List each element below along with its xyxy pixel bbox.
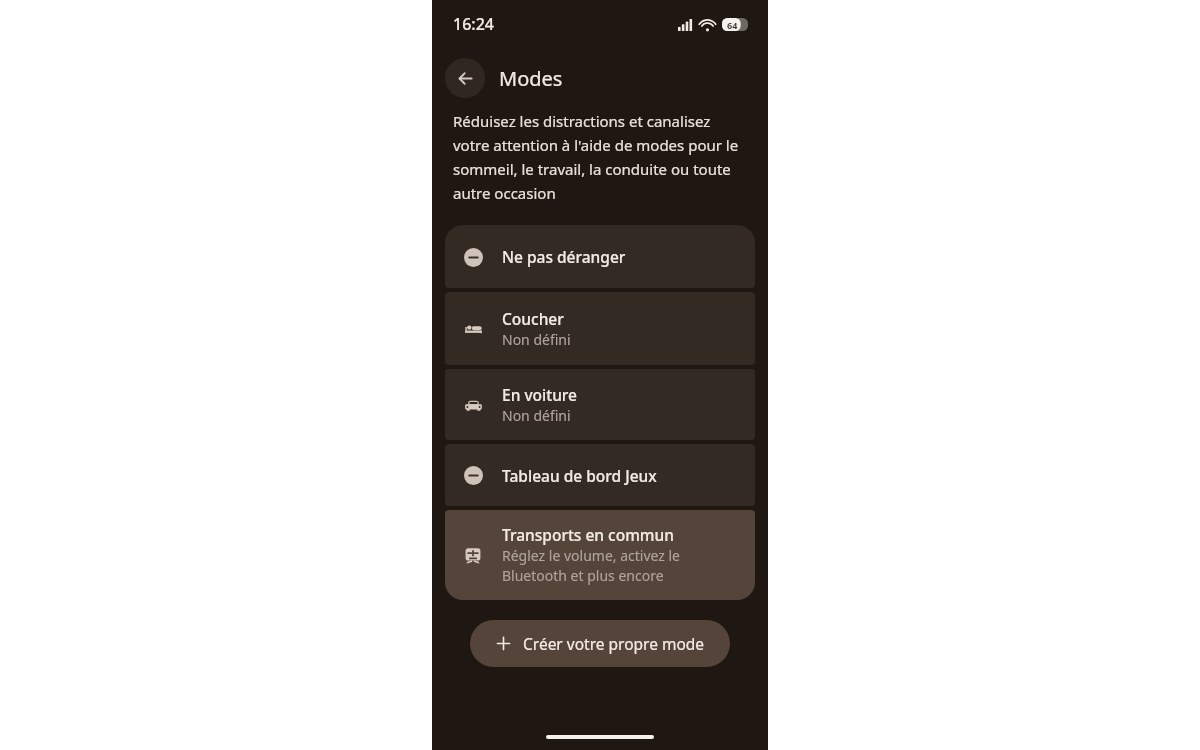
button[interactable]: Tableau de bord Jeux [445, 444, 755, 506]
button[interactable]: Créer votre propre mode [470, 620, 730, 667]
staticText: Non défini [502, 406, 571, 425]
button[interactable]: Back [445, 58, 485, 98]
staticText: 64 [727, 19, 738, 31]
staticText: Coucher [502, 308, 564, 329]
staticText: Réduisez les distractions et canalisez v… [453, 111, 746, 203]
staticText: Non défini [502, 330, 571, 349]
staticText: Créer votre propre mode [523, 633, 705, 654]
button[interactable]: Ne pas déranger [445, 225, 755, 288]
staticText: Ne pas déranger [502, 246, 626, 267]
button[interactable]: En voiture [445, 369, 755, 440]
staticText: En voiture [502, 384, 578, 405]
staticText: Tableau de bord Jeux [502, 465, 657, 486]
staticText: 16:24 [453, 13, 494, 35]
staticText: Modes [499, 65, 563, 92]
staticText: Transports en commun [502, 524, 674, 545]
button[interactable]: Coucher [445, 292, 755, 365]
staticText: Réglez le volume, activez le Bluetooth e… [502, 546, 681, 586]
button[interactable]: Transports en commun [445, 510, 755, 600]
